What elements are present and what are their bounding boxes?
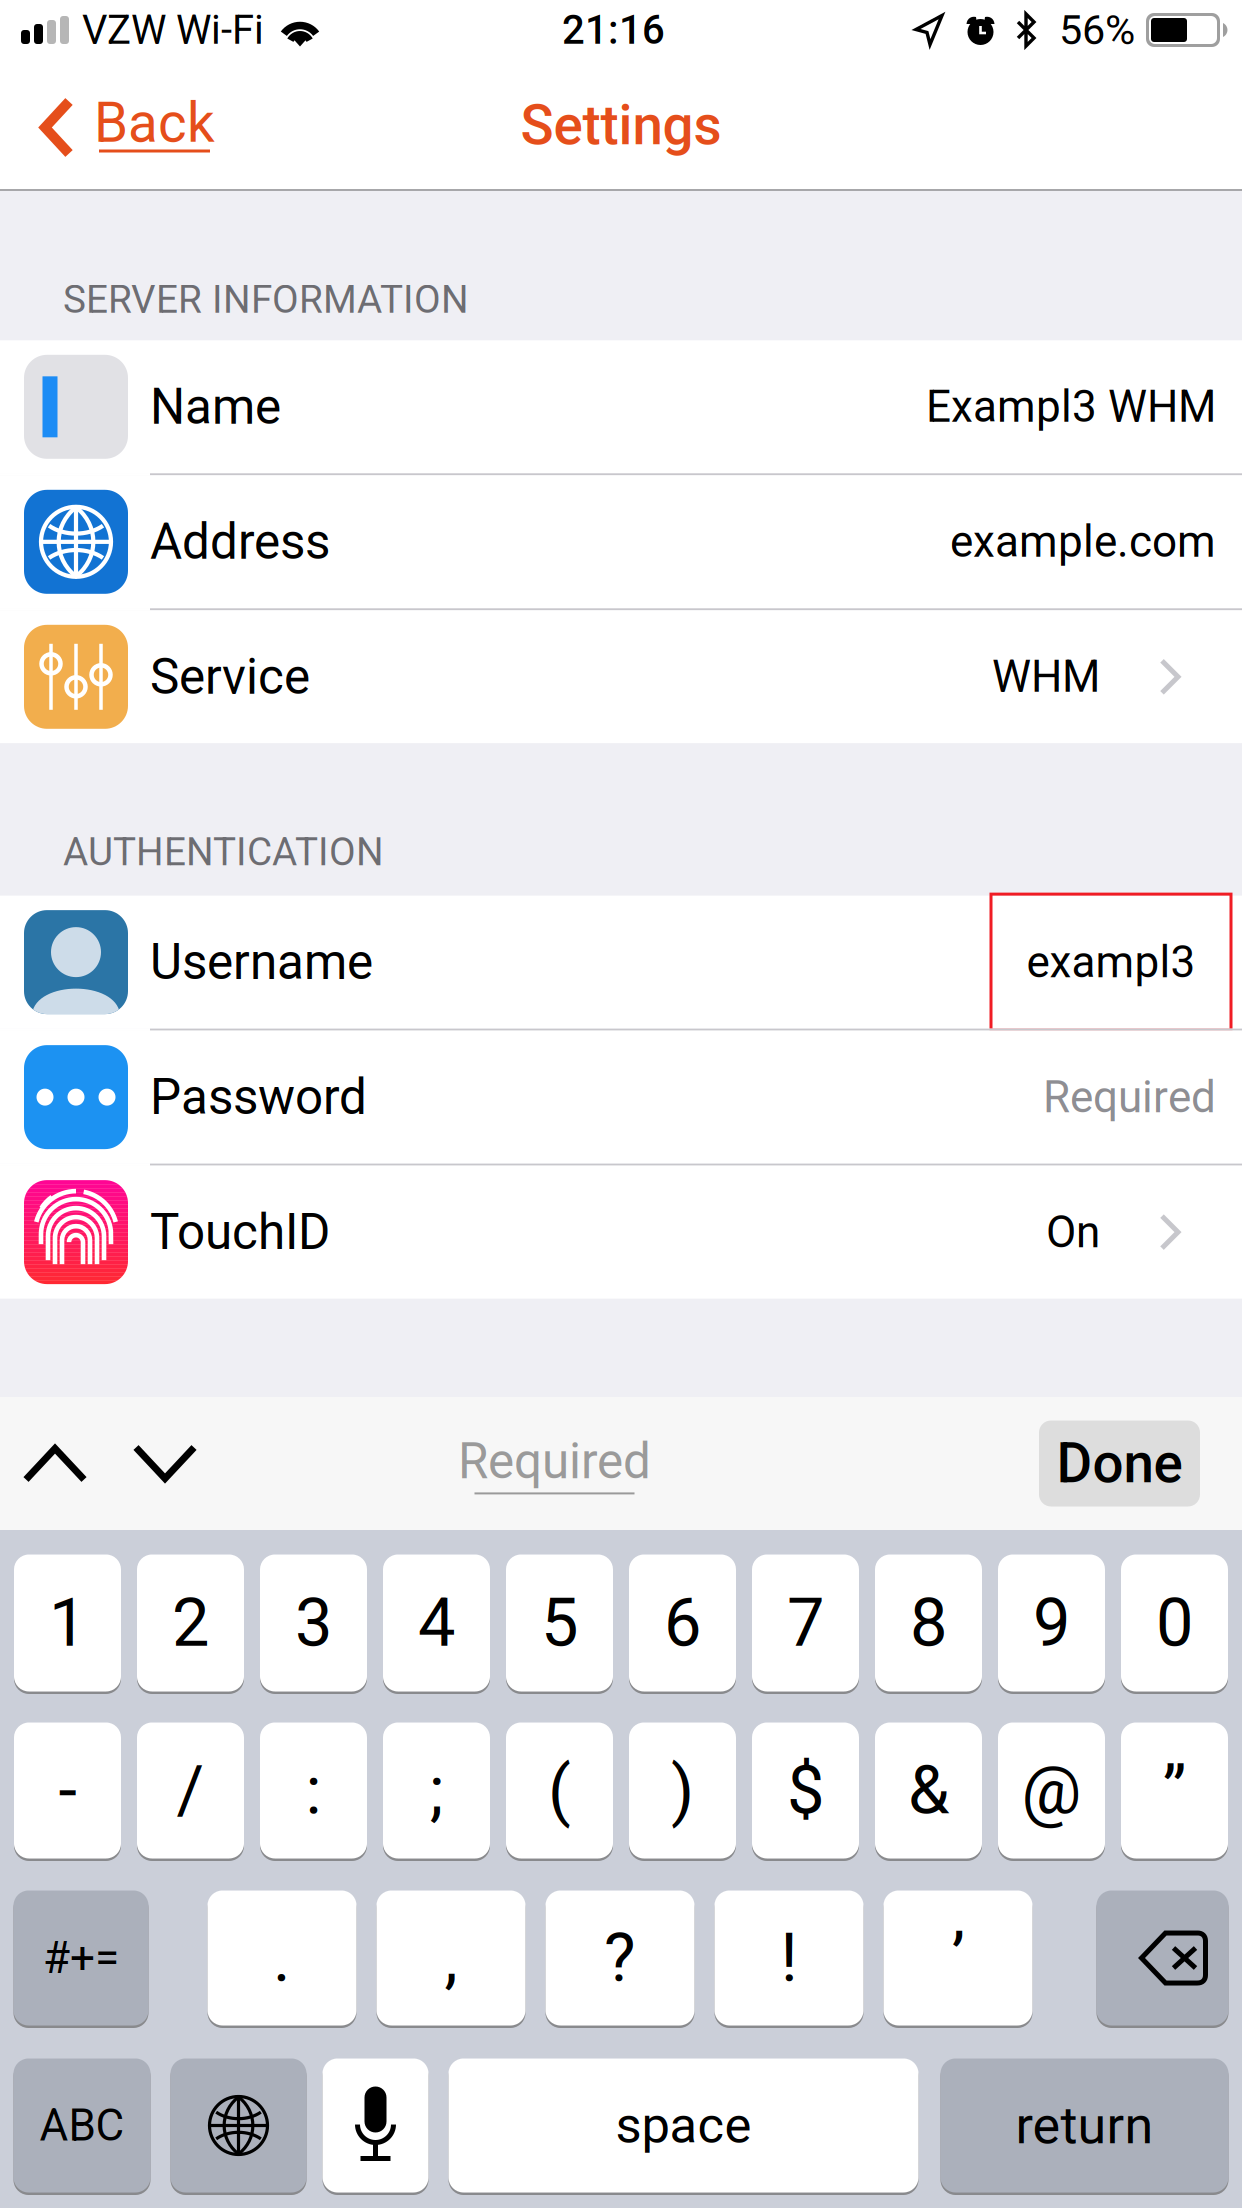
button[interactable]: : — [260, 1720, 367, 1861]
staticText: Required — [1043, 1071, 1216, 1123]
staticText: 8 — [910, 1584, 947, 1662]
staticText: VZW Wi-Fi — [82, 7, 264, 53]
staticText: SERVER INFORMATION — [63, 277, 469, 322]
staticText: 9 — [1033, 1584, 1070, 1662]
staticText: Name — [150, 378, 281, 436]
staticText: 3 — [295, 1584, 332, 1662]
staticText: space — [615, 2096, 751, 2155]
button[interactable]: Delete — [1096, 1888, 1228, 2028]
staticText: Done — [1056, 1431, 1182, 1496]
button[interactable]: / — [137, 1720, 244, 1861]
staticText: 56% — [1059, 6, 1135, 54]
button[interactable]: 7 — [752, 1552, 859, 1694]
staticText: & — [908, 1751, 949, 1829]
staticText: AUTHENTICATION — [63, 829, 384, 875]
staticText: ; — [429, 1751, 443, 1829]
button[interactable]: return — [940, 2056, 1228, 2195]
button[interactable]: ABC — [13, 2056, 150, 2195]
staticText: $ — [787, 1751, 824, 1829]
button[interactable]: ( — [506, 1720, 613, 1861]
button[interactable]: Back — [0, 60, 215, 191]
button[interactable]: 1 — [14, 1552, 121, 1694]
button[interactable]: - — [14, 1720, 121, 1861]
staticText: #+= — [43, 1932, 119, 1984]
staticText: Address — [150, 513, 330, 571]
staticText: On — [1046, 1206, 1100, 1258]
button[interactable]: 8 — [875, 1552, 982, 1694]
staticText: ? — [604, 1919, 636, 1997]
button[interactable]: 4 — [383, 1552, 490, 1694]
staticText: 5 — [541, 1584, 578, 1662]
staticText: : — [305, 1751, 321, 1829]
button[interactable]: , — [376, 1888, 525, 2028]
button[interactable]: 6 — [629, 1552, 736, 1694]
staticText: / — [176, 1751, 204, 1829]
staticText: Settings — [520, 93, 721, 158]
staticText: 6 — [664, 1584, 701, 1662]
staticText: WHM — [992, 651, 1100, 703]
button[interactable]: space — [448, 2056, 918, 2195]
button[interactable]: & — [875, 1720, 982, 1861]
button[interactable]: ’ — [883, 1888, 1032, 2028]
button[interactable]: ” — [1121, 1720, 1228, 1861]
staticText: Required — [458, 1433, 651, 1490]
staticText: 7 — [787, 1584, 824, 1662]
button[interactable]: Address — [0, 475, 1242, 608]
button[interactable]: Username — [0, 896, 1242, 1029]
staticText: - — [58, 1751, 76, 1829]
button[interactable]: . — [207, 1888, 356, 2028]
staticText: ABC — [39, 2100, 124, 2151]
button[interactable]: ) — [629, 1720, 736, 1861]
staticText: 0 — [1156, 1584, 1193, 1662]
staticText: exampl3 — [1026, 936, 1195, 988]
staticText: , — [444, 1919, 457, 1997]
button[interactable]: 9 — [998, 1552, 1105, 1694]
button[interactable]: 3 — [260, 1552, 367, 1694]
staticText: ) — [671, 1751, 694, 1829]
button[interactable]: 5 — [506, 1552, 613, 1694]
button[interactable]: ? — [545, 1888, 694, 2028]
staticText: return — [1015, 2095, 1153, 2156]
button[interactable]: Done — [1039, 1420, 1200, 1506]
staticText: ( — [548, 1751, 571, 1829]
staticText: ! — [780, 1919, 797, 1997]
staticText: example.com — [950, 516, 1216, 568]
staticText: Username — [150, 933, 373, 991]
button[interactable]: Previous field — [0, 1397, 110, 1530]
staticText: Back — [94, 91, 215, 155]
button[interactable]: Dictation — [322, 2056, 428, 2195]
staticText: Password — [150, 1068, 367, 1126]
button[interactable]: 0 — [1121, 1552, 1228, 1694]
button[interactable]: @ — [998, 1720, 1105, 1861]
staticText: . — [273, 1919, 291, 1997]
staticText: TouchID — [150, 1203, 330, 1261]
button[interactable]: TouchID — [0, 1166, 1242, 1299]
staticText: @ — [1021, 1751, 1081, 1829]
button[interactable]: 2 — [137, 1552, 244, 1694]
staticText: Service — [150, 648, 310, 706]
staticText: Exampl3 WHM — [926, 381, 1216, 433]
button[interactable]: Next field — [110, 1397, 220, 1530]
staticText: ” — [1162, 1751, 1186, 1829]
staticText: 21:16 — [562, 7, 665, 53]
staticText: 2 — [172, 1584, 209, 1662]
staticText: ’ — [951, 1919, 964, 1997]
button[interactable]: $ — [752, 1720, 859, 1861]
button[interactable]: ! — [714, 1888, 863, 2028]
button[interactable]: Next keyboard — [170, 2056, 306, 2195]
staticText: 4 — [418, 1584, 455, 1662]
button[interactable]: Service — [0, 610, 1242, 743]
button[interactable]: ; — [383, 1720, 490, 1861]
button[interactable]: Password — [0, 1031, 1242, 1164]
button[interactable]: #+= — [13, 1888, 148, 2028]
button[interactable]: Name — [0, 340, 1242, 473]
staticText: 1 — [49, 1584, 86, 1662]
